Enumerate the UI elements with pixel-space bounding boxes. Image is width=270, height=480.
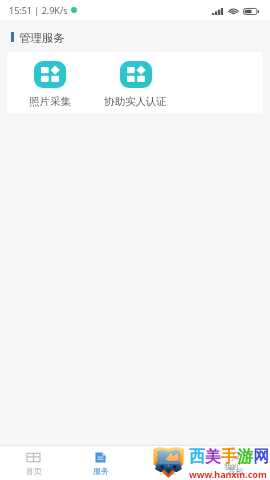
staticText: 网 bbox=[253, 447, 269, 467]
staticText: 西 bbox=[189, 447, 205, 467]
staticText: 管理服务 bbox=[19, 31, 65, 43]
staticText: 美 bbox=[205, 447, 221, 467]
staticText: 我的 bbox=[228, 466, 244, 476]
staticText: 服务 bbox=[93, 466, 109, 476]
button[interactable]: 协助实人认证 bbox=[93, 52, 178, 113]
staticText: www.hanxin.com bbox=[189, 468, 267, 480]
staticText: 游 bbox=[237, 447, 253, 467]
button[interactable]: 照片采集 bbox=[7, 52, 93, 113]
staticText: 照片采集 bbox=[29, 95, 71, 108]
staticText: 15:51 | 2.9K/s bbox=[9, 4, 68, 16]
staticText: 首页 bbox=[26, 466, 42, 476]
staticText: 消息 bbox=[160, 466, 176, 476]
staticText: 我的 bbox=[224, 462, 238, 471]
button[interactable]: 我的 bbox=[202, 446, 270, 480]
staticText: 协助实人认证 bbox=[104, 95, 167, 108]
button[interactable]: 消息 bbox=[134, 446, 202, 480]
staticText: 手 bbox=[221, 447, 237, 467]
button[interactable]: 服务 bbox=[67, 446, 134, 480]
button[interactable]: 首页 bbox=[0, 446, 67, 480]
